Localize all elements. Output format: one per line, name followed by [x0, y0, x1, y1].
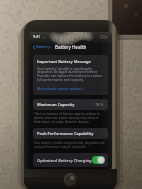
staticText: 9:41 [33, 34, 41, 39]
button[interactable]: Maximum Capacity [33, 99, 108, 110]
staticText: Battery [36, 44, 51, 50]
staticText: Maximum Capacity [37, 102, 75, 107]
staticText: This is a measure of battery capacity re… [34, 112, 107, 124]
button[interactable]: Important Battery Message [33, 55, 108, 95]
staticText: Your battery's health is significantly d… [34, 141, 107, 149]
button[interactable]: Battery [29, 42, 55, 52]
staticText: Important Battery Message [37, 59, 91, 64]
staticText: Optimized Battery Charging [37, 158, 92, 163]
button[interactable]: Peak Performance Capability [33, 128, 108, 139]
staticText: 78 % [95, 102, 104, 107]
button[interactable]: Optimized Battery Charging [33, 153, 108, 167]
staticText: Battery Health [55, 44, 87, 50]
button[interactable]: Optimized Battery Charging toggle, on [92, 156, 105, 164]
staticText: Peak Performance Capability [37, 131, 94, 136]
staticText: Your battery's health is significantly d… [37, 66, 104, 82]
button[interactable]: More about service options... [37, 86, 85, 91]
